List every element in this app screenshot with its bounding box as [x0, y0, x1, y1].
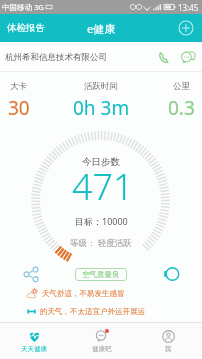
staticText: 杭州希和信息技术有限公司	[5, 52, 107, 63]
staticText: 健康吧	[92, 345, 112, 353]
staticText: 活跃时间	[84, 81, 118, 92]
staticText: 大卡	[10, 81, 27, 92]
button[interactable]: 天天健康	[0, 323, 68, 359]
button[interactable]: Message	[179, 49, 196, 66]
button[interactable]: 体检报告	[0, 18, 49, 38]
button[interactable]: 我	[135, 323, 202, 359]
button[interactable]: Share	[23, 266, 39, 282]
staticText: 空气质量良	[82, 270, 120, 279]
staticText: 目标：10000	[75, 215, 128, 227]
button[interactable]: 空气质量良	[75, 268, 127, 281]
staticText: 的天气，不太适宜户外运开展运	[40, 307, 145, 316]
staticText: 今日步数	[82, 156, 120, 168]
staticText: 我	[165, 345, 172, 353]
button[interactable]: Call	[157, 50, 172, 65]
staticText: 公里	[173, 81, 190, 92]
button[interactable]: 公里	[160, 81, 202, 120]
staticText: 471	[72, 162, 134, 211]
staticText: 天天健康	[21, 345, 47, 353]
button[interactable]: Add	[178, 20, 202, 36]
staticText: 13:45	[178, 2, 199, 13]
staticText: 天气舒适，不易发生感冒	[42, 289, 125, 298]
button[interactable]: 活跃时间	[66, 81, 136, 120]
staticText: e健康	[87, 21, 116, 36]
button[interactable]: Watch device	[162, 265, 181, 283]
staticText: 0h 3m	[73, 95, 130, 120]
button[interactable]: 大卡	[0, 81, 37, 120]
staticText: 30	[8, 95, 30, 120]
button[interactable]: 健康吧	[68, 323, 135, 359]
staticText: 0.3	[168, 95, 195, 120]
staticText: 等级： 轻度活跃	[70, 237, 132, 249]
staticText: 中国移动 3G	[2, 2, 44, 12]
